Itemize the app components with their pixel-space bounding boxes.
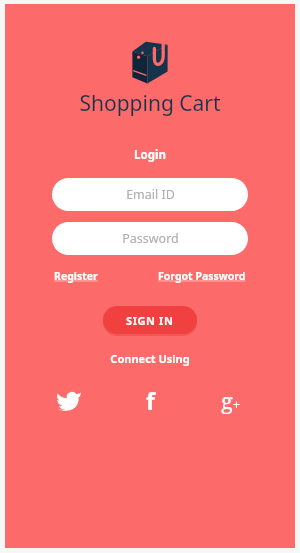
button[interactable]: Register <box>52 266 100 286</box>
staticText: Shopping Cart <box>79 89 221 118</box>
button[interactable]: Email ID <box>52 178 248 211</box>
staticText: Password <box>122 230 179 247</box>
staticText: Connect Using <box>110 351 190 366</box>
button[interactable]: Sign in with Google Plus <box>214 383 248 417</box>
staticText: SIGN IN <box>126 313 174 328</box>
button[interactable]: Sign in with Facebook <box>133 383 167 417</box>
staticText: Email ID <box>126 186 175 203</box>
button[interactable]: Sign in with Twitter <box>52 383 86 417</box>
button[interactable]: Password <box>52 222 248 255</box>
staticText: g+ <box>221 385 241 415</box>
staticText: f <box>146 385 155 416</box>
staticText: Login <box>134 147 166 163</box>
staticText: Register <box>54 269 98 283</box>
button[interactable]: Forgot Password <box>156 266 248 286</box>
staticText: Forgot Password <box>158 269 246 283</box>
button[interactable]: SIGN IN <box>103 306 197 334</box>
